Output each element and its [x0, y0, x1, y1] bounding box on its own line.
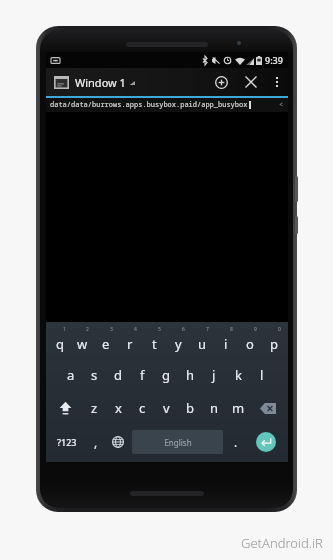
- staticText: English: [164, 437, 192, 448]
- button[interactable]: Window 1: [46, 68, 141, 96]
- staticText: r: [127, 335, 133, 353]
- staticText: 9:39: [265, 54, 283, 66]
- button[interactable]: English: [132, 430, 223, 454]
- button[interactable]: 0: [262, 325, 286, 358]
- staticText: s: [91, 366, 98, 384]
- staticText: j: [212, 366, 216, 384]
- staticText: h: [186, 366, 195, 384]
- button[interactable]: x: [106, 391, 130, 425]
- staticText: Window 1: [75, 75, 126, 90]
- staticText: u: [198, 335, 207, 353]
- staticText: b: [186, 399, 194, 417]
- staticText: o: [246, 335, 254, 353]
- button[interactable]: 4: [118, 325, 142, 358]
- button[interactable]: Close window: [236, 68, 266, 96]
- button[interactable]: a: [59, 358, 82, 391]
- button[interactable]: Backspace: [250, 391, 286, 425]
- staticText: <: [279, 100, 284, 110]
- button[interactable]: 1: [48, 325, 71, 358]
- staticText: n: [210, 399, 219, 417]
- staticText: 3: [110, 326, 113, 333]
- button[interactable]: h: [178, 358, 202, 391]
- staticText: q: [56, 335, 64, 353]
- button[interactable]: .: [225, 425, 246, 459]
- button[interactable]: m: [226, 391, 250, 425]
- button[interactable]: n: [202, 391, 226, 425]
- button[interactable]: 5: [142, 325, 166, 358]
- staticText: 9: [254, 326, 257, 333]
- staticText: d: [114, 366, 122, 384]
- staticText: GetAndroid.iR: [241, 534, 323, 552]
- button[interactable]: More options: [266, 68, 288, 96]
- staticText: t: [152, 335, 157, 353]
- button[interactable]: ,: [85, 425, 106, 459]
- button[interactable]: s: [82, 358, 106, 391]
- button[interactable]: 3: [94, 325, 118, 358]
- button[interactable]: 9: [238, 325, 262, 358]
- staticText: p: [270, 335, 278, 353]
- staticText: ?123: [57, 436, 77, 448]
- staticText: 5: [158, 326, 161, 333]
- staticText: 6: [182, 326, 185, 333]
- staticText: x: [115, 399, 122, 417]
- staticText: 4: [134, 326, 137, 333]
- button[interactable]: j: [202, 358, 226, 391]
- staticText: y: [175, 335, 182, 353]
- button[interactable]: v: [154, 391, 178, 425]
- button[interactable]: d: [106, 358, 130, 391]
- staticText: 2: [86, 326, 89, 333]
- staticText: k: [235, 366, 242, 384]
- button[interactable]: Enter: [246, 425, 286, 459]
- staticText: 7: [206, 326, 209, 333]
- button[interactable]: New window: [206, 68, 236, 96]
- staticText: i: [224, 335, 228, 353]
- button[interactable]: ?123: [48, 425, 85, 459]
- button[interactable]: 2: [71, 325, 94, 358]
- staticText: .: [234, 434, 238, 450]
- staticText: g: [162, 366, 170, 384]
- staticText: data/data/burrows.apps.busybox.paid/app_…: [50, 100, 248, 110]
- button[interactable]: b: [178, 391, 202, 425]
- button[interactable]: c: [130, 391, 154, 425]
- staticText: ,: [94, 434, 98, 450]
- staticText: f: [140, 366, 145, 384]
- button[interactable]: 7: [190, 325, 214, 358]
- staticText: 0: [278, 326, 281, 333]
- staticText: c: [139, 399, 146, 417]
- staticText: e: [102, 335, 110, 353]
- staticText: l: [260, 366, 264, 384]
- staticText: a: [67, 366, 75, 384]
- button[interactable]: Change language: [106, 425, 130, 459]
- staticText: v: [163, 399, 170, 417]
- button[interactable]: 8: [214, 325, 238, 358]
- staticText: 8: [230, 326, 233, 333]
- button[interactable]: k: [226, 358, 250, 391]
- button[interactable]: z: [83, 391, 106, 425]
- button[interactable]: g: [154, 358, 178, 391]
- staticText: 1: [63, 326, 66, 333]
- button[interactable]: f: [130, 358, 154, 391]
- button[interactable]: 6: [166, 325, 190, 358]
- button[interactable]: l: [250, 358, 274, 391]
- staticText: m: [232, 399, 245, 417]
- staticText: w: [77, 335, 88, 353]
- staticText: z: [91, 399, 98, 417]
- button[interactable]: Shift: [48, 391, 83, 425]
